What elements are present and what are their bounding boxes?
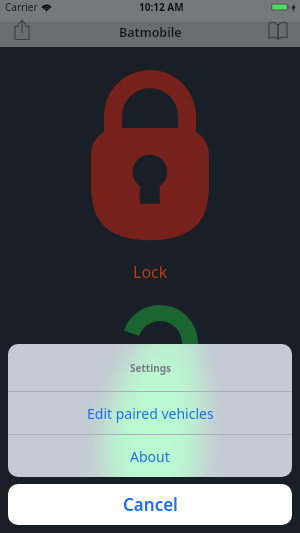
staticText: Batmobile xyxy=(119,24,182,41)
staticText: 10:12 AM xyxy=(139,0,184,14)
staticText: Settings xyxy=(130,361,171,375)
staticText: Carrier xyxy=(5,0,38,14)
button[interactable]: Edit paired vehicles xyxy=(8,392,292,434)
staticText: Edit paired vehicles xyxy=(87,404,214,423)
button[interactable]: Share xyxy=(6,16,38,41)
button[interactable]: Guide xyxy=(263,19,293,44)
button[interactable]: About xyxy=(8,435,292,477)
staticText: About xyxy=(130,447,170,466)
staticText: Lock xyxy=(133,261,168,283)
staticText: Cancel xyxy=(123,493,178,516)
button[interactable]: Cancel xyxy=(8,484,292,525)
